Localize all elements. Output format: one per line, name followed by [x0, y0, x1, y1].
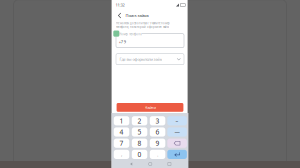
staticText: +7 9 — [119, 39, 126, 44]
staticText: 9 — [156, 139, 160, 148]
staticText: Поиск займа — [126, 13, 149, 18]
button[interactable]: 5 — [132, 127, 147, 137]
button[interactable]: Найти — [117, 103, 183, 112]
button[interactable]: 1 — [114, 116, 129, 125]
button[interactable]: 9 — [150, 139, 165, 148]
staticText: 5 — [138, 128, 142, 136]
button[interactable]: Где вы оформляли заём — [116, 54, 184, 65]
staticText: 3 — [156, 116, 160, 125]
staticText: телефона, на который оформлен займ — [116, 25, 169, 29]
button[interactable]: 8 — [132, 139, 147, 148]
button[interactable]: 2 — [132, 116, 147, 125]
button[interactable]: . — [150, 150, 165, 159]
staticText: 6 — [156, 128, 160, 136]
staticText: 4 — [119, 128, 123, 136]
staticText: 1 — [119, 116, 123, 125]
staticText: Найти — [144, 105, 155, 110]
staticText: – — [176, 117, 179, 124]
button[interactable]: 3 — [150, 116, 165, 125]
staticText: 2 — [138, 116, 142, 125]
button[interactable]: Back — [114, 9, 126, 21]
button[interactable]: 7 — [114, 139, 129, 148]
button[interactable]: Backspace — [167, 139, 187, 148]
button[interactable]: 6 — [150, 127, 165, 137]
staticText: 11:32 — [116, 2, 125, 8]
staticText: . — [157, 151, 158, 158]
staticText: 0 — [138, 150, 142, 159]
staticText: , — [121, 151, 122, 158]
staticText: Номер телефона — [119, 32, 141, 36]
staticText: 8 — [138, 139, 142, 148]
staticText: Не можем дозвониться? Укажите номер — [116, 21, 170, 25]
button[interactable]: Long dash — [167, 127, 187, 137]
button[interactable]: Enter — [167, 150, 187, 159]
staticText: Где вы оформляли заём — [119, 56, 162, 62]
button[interactable]: Dash — [167, 116, 187, 125]
button[interactable]: 4 — [114, 127, 129, 137]
button[interactable]: 0 — [132, 150, 147, 159]
staticText: — — [175, 128, 180, 136]
button[interactable]: , — [114, 150, 129, 159]
staticText: 7 — [119, 139, 123, 148]
